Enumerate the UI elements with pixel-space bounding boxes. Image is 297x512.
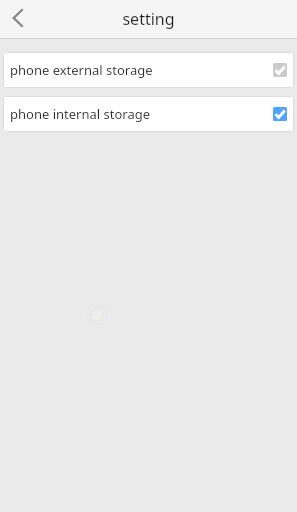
- button[interactable]: Back: [0, 0, 38, 38]
- staticText: phone internal storage: [10, 105, 150, 123]
- button[interactable]: Checked disabled: [273, 63, 287, 77]
- staticText: setting: [122, 8, 175, 30]
- button[interactable]: phone internal storage: [3, 96, 294, 132]
- staticText: phone external storage: [10, 61, 153, 79]
- button[interactable]: Checked: [273, 107, 287, 121]
- button[interactable]: phone external storage: [3, 52, 294, 88]
